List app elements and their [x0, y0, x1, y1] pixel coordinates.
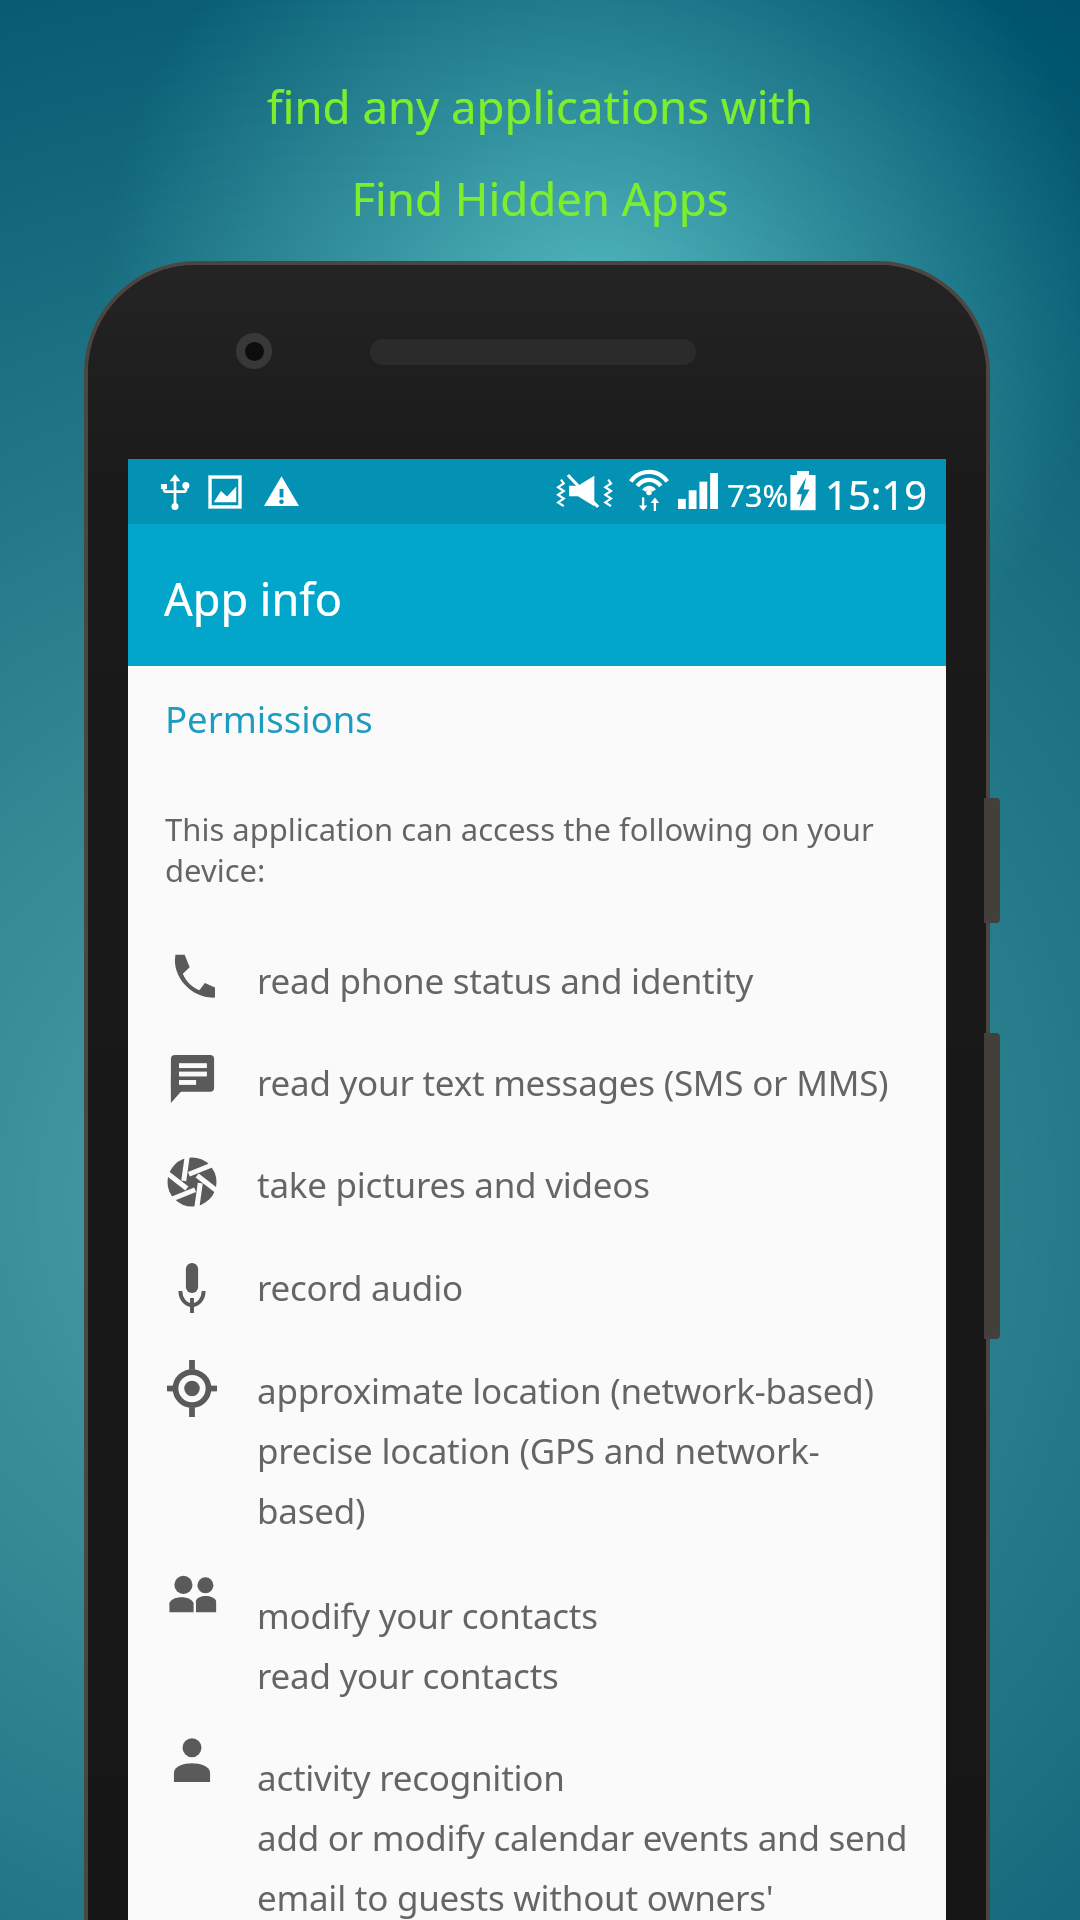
- other: Power button: [984, 798, 1000, 923]
- staticText: find any applications with: [0, 75, 1080, 137]
- button[interactable]: approximate location (network-based) pre…: [128, 1367, 946, 1592]
- staticText: approximate location (network-based) pre…: [257, 1367, 922, 1535]
- button[interactable]: record audio: [128, 1264, 946, 1367]
- staticText: 73%: [727, 474, 789, 516]
- staticText: 15:19: [825, 467, 928, 521]
- button[interactable]: App info: [128, 524, 946, 666]
- staticText: This application can access the followin…: [165, 808, 905, 891]
- button[interactable]: activity recognition add or modify calen…: [128, 1754, 946, 1920]
- button[interactable]: read phone status and identity: [128, 957, 946, 1059]
- staticText: read phone status and identity: [257, 957, 922, 1005]
- staticText: Find Hidden Apps: [0, 167, 1080, 229]
- button[interactable]: modify your contacts read your contacts: [128, 1592, 946, 1754]
- staticText: App info: [164, 568, 342, 629]
- staticText: read your text messages (SMS or MMS): [257, 1059, 922, 1107]
- staticText: take pictures and videos: [257, 1161, 922, 1209]
- staticText: modify your contacts read your contacts: [257, 1592, 922, 1700]
- button[interactable]: read your text messages (SMS or MMS): [128, 1059, 946, 1161]
- staticText: Permissions: [165, 694, 373, 744]
- staticText: record audio: [257, 1264, 922, 1312]
- staticText: activity recognition add or modify calen…: [257, 1754, 922, 1920]
- button[interactable]: take pictures and videos: [128, 1161, 946, 1264]
